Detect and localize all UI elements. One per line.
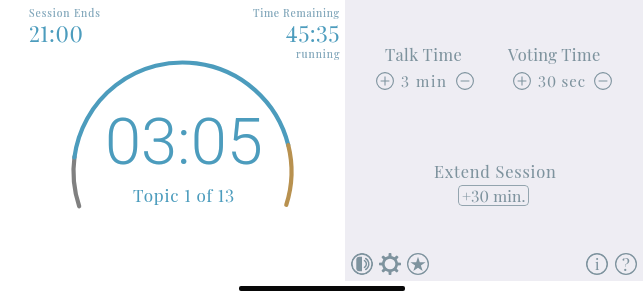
staticText: Talk Time: [385, 43, 463, 65]
button[interactable]: +30 min.: [458, 185, 529, 206]
button[interactable]: Increase: [512, 71, 532, 91]
staticText: 30 sec: [538, 71, 586, 91]
staticText: Voting Time: [508, 43, 601, 65]
staticText: +30 min.: [462, 185, 526, 206]
button[interactable]: Help: [615, 253, 637, 275]
button[interactable]: Settings: [379, 253, 401, 275]
staticText: ?: [622, 253, 630, 275]
staticText: Session Ends: [29, 6, 101, 20]
staticText: running: [296, 47, 341, 61]
staticText: 03:05: [105, 104, 263, 180]
staticText: Time Remaining: [253, 6, 340, 20]
staticText: 45:35: [286, 18, 340, 47]
staticText: i: [595, 254, 600, 274]
button[interactable]: Decrease: [593, 71, 613, 91]
button[interactable]: Decrease: [455, 71, 475, 91]
staticText: 21:00: [29, 18, 84, 47]
staticText: Topic 1 of 13: [133, 184, 235, 207]
staticText: Extend Session: [434, 160, 557, 182]
staticText: 3 min: [401, 71, 448, 91]
button[interactable]: Sound: [351, 253, 373, 275]
button[interactable]: Favorite: [407, 253, 429, 275]
button[interactable]: Increase: [375, 71, 395, 91]
button[interactable]: Info: [586, 253, 608, 275]
